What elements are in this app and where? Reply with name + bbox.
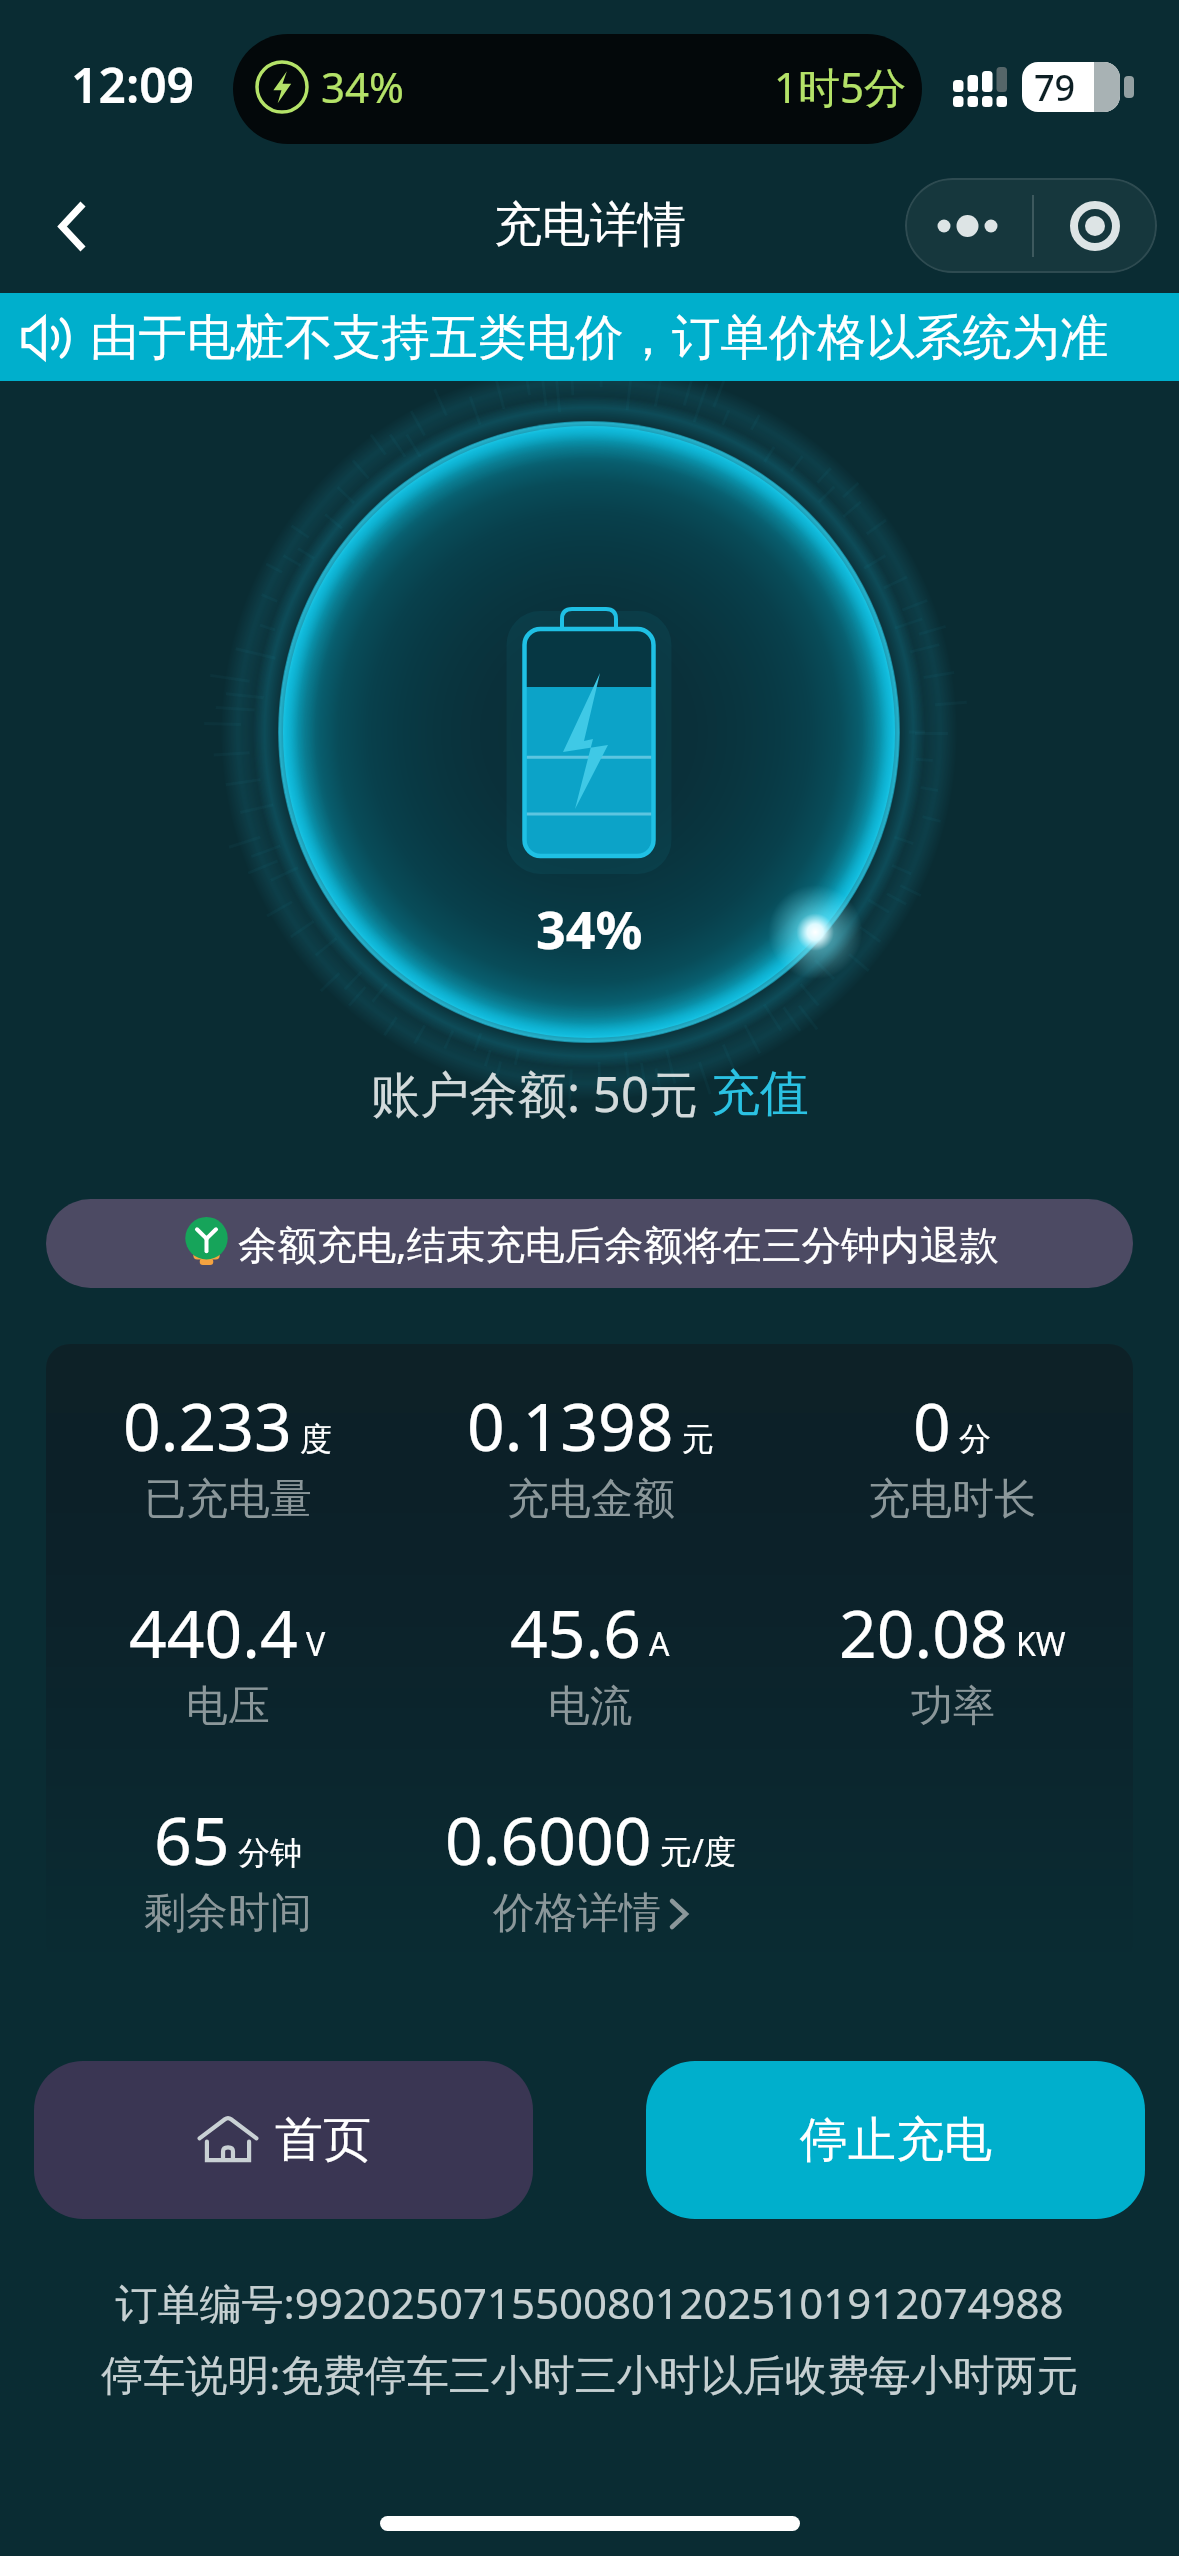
button[interactable]: Close mini program [1033, 178, 1157, 273]
staticText: 已充电量 [144, 1473, 312, 1526]
staticText: 0.1398 [467, 1380, 674, 1470]
staticText: 停止充电 [800, 2110, 992, 2170]
staticText: 440.4 [129, 1587, 298, 1677]
button[interactable]: 余额充电,结束充电后余额将在三分钟内退款 [46, 1199, 1133, 1288]
staticText: 20.08 [839, 1587, 1008, 1677]
staticText: 充值 [711, 1063, 809, 1125]
staticText: 充电详情 [494, 195, 686, 255]
staticText: 分钟 [238, 1833, 302, 1873]
staticText: 余额充电,结束充电后余额将在三分钟内退款 [238, 1217, 1000, 1271]
staticText: 65 [154, 1794, 230, 1884]
staticText: 停车说明:免费停车三小时三小时以后收费每小时两元 [101, 2345, 1079, 2402]
staticText: 34% [321, 58, 404, 115]
staticText: 元 [682, 1419, 714, 1459]
button[interactable]: Back [14, 160, 130, 293]
staticText: 由于电桩不支持五类电价，订单价格以系统为准 [90, 307, 1109, 368]
staticText: 首页 [275, 2110, 371, 2170]
staticText: 34% [536, 893, 643, 964]
staticText: 账户余额: 50元 [371, 1060, 711, 1127]
staticText: 电压 [186, 1680, 270, 1733]
staticText: 0.233 [123, 1380, 292, 1470]
staticText: 45.6 [510, 1587, 641, 1677]
button[interactable]: 充值 [711, 1063, 809, 1125]
staticText: A [649, 1622, 670, 1666]
staticText: 功率 [911, 1680, 995, 1733]
staticText: 1时5分 [774, 58, 907, 115]
staticText: 度 [300, 1419, 332, 1459]
staticText: 0.6000 [445, 1794, 652, 1884]
staticText: 79 [1034, 63, 1076, 112]
staticText: KW [1016, 1622, 1066, 1666]
staticText: 电流 [548, 1680, 632, 1733]
staticText: 充电金额 [507, 1473, 675, 1526]
staticText: 订单编号:99202507155008012025101912074988 [115, 2274, 1064, 2331]
staticText: 12:09 [71, 52, 195, 117]
staticText: 价格详情 [493, 1887, 661, 1940]
staticText: 充电时长 [868, 1473, 1036, 1526]
button[interactable]: More options [905, 178, 1029, 273]
staticText: 剩余时间 [144, 1887, 312, 1940]
button[interactable]: 价格详情 [493, 1887, 689, 1940]
button[interactable]: 停止充电 [646, 2061, 1145, 2219]
staticText: V [306, 1622, 326, 1666]
staticText: 0 [913, 1380, 951, 1470]
staticText: 分 [959, 1419, 991, 1459]
button[interactable]: 首页 [34, 2061, 533, 2219]
staticText: 元/度 [660, 1829, 736, 1873]
